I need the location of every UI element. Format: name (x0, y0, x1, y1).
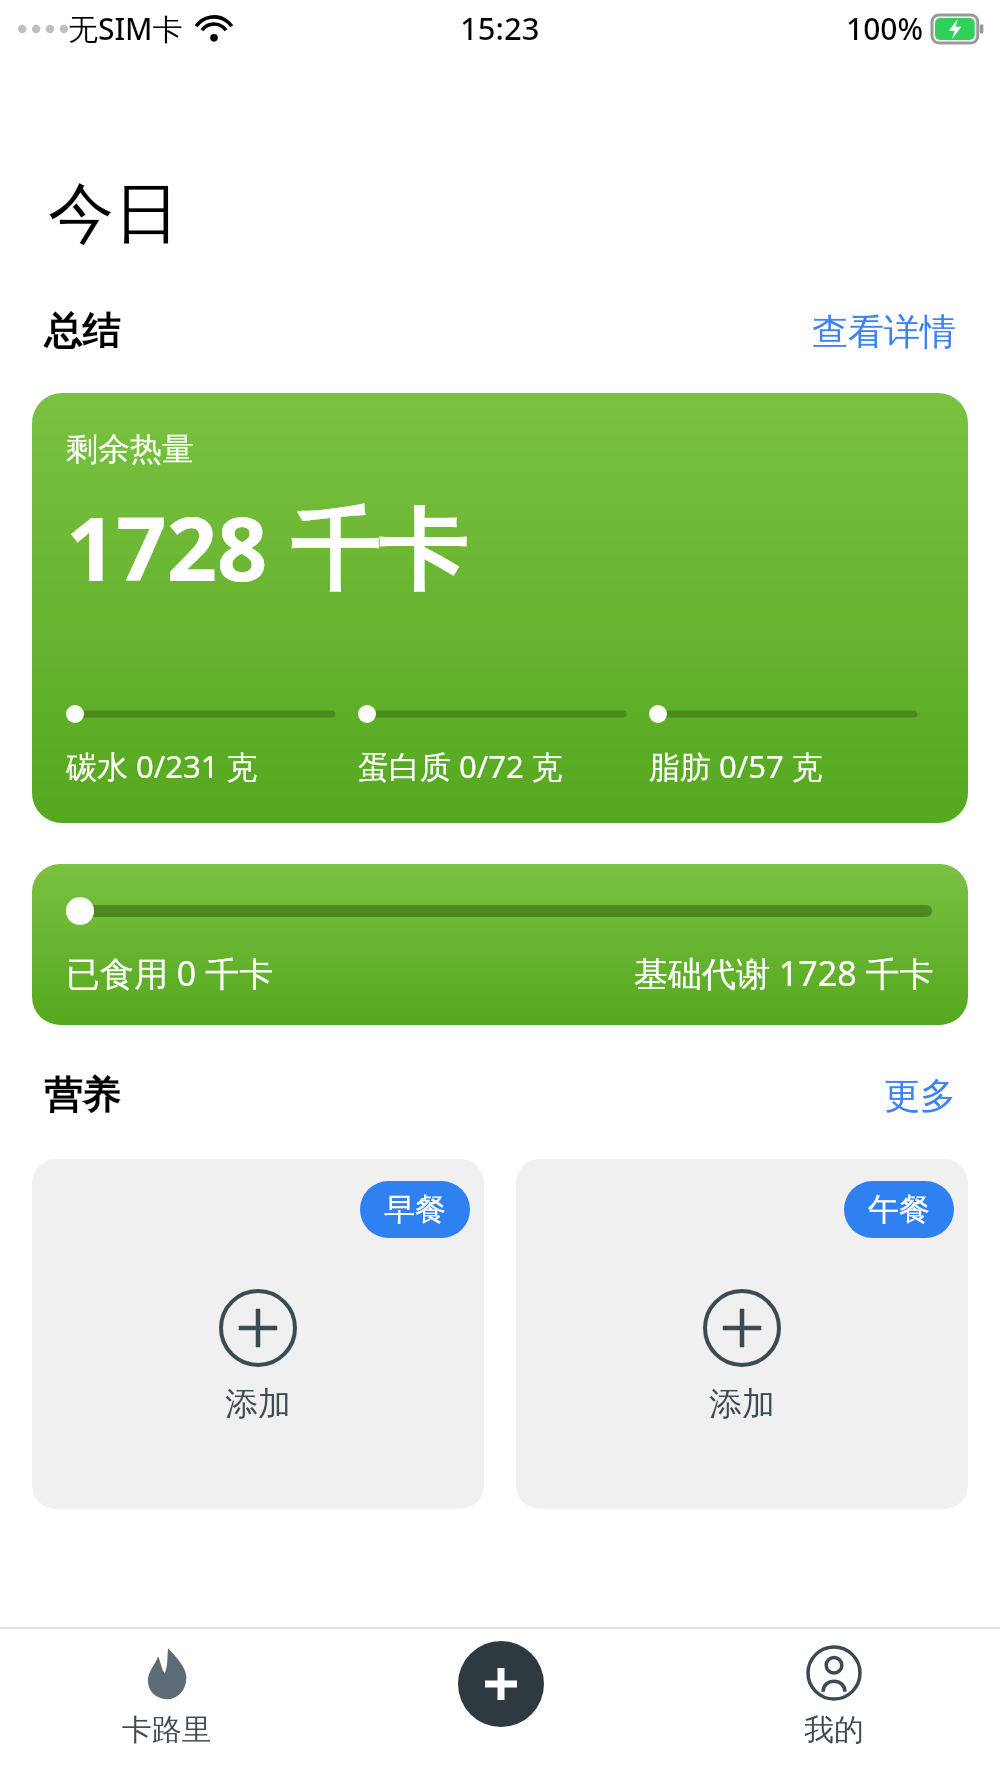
staticText: 1728 千卡 (66, 487, 467, 607)
staticText: 更多 (884, 1073, 956, 1118)
staticText: 基础代谢 1728 千卡 (634, 950, 934, 996)
staticText: 我的 (804, 1711, 864, 1749)
staticText: 午餐 (868, 1190, 930, 1229)
staticText: 卡路里 (122, 1711, 212, 1749)
staticText: 100% (846, 8, 924, 49)
button[interactable]: 午餐 (516, 1159, 968, 1509)
button[interactable]: 更多 (884, 1073, 956, 1118)
staticText: 蛋白质 0/72 克 (358, 745, 563, 787)
button[interactable]: Add entry (458, 1641, 544, 1727)
staticText: 总结 (44, 307, 120, 355)
button[interactable]: 已食用 0 千卡 (32, 864, 968, 1025)
staticText: 添加 (225, 1383, 291, 1425)
button[interactable]: 午餐 (844, 1181, 954, 1238)
staticText: 添加 (709, 1383, 775, 1425)
staticText: 无SIM卡 (68, 8, 183, 49)
staticText: 查看详情 (812, 309, 956, 354)
staticText: 脂肪 0/57 克 (649, 745, 823, 787)
staticText: 已食用 0 千卡 (66, 950, 274, 996)
staticText: 营养 (44, 1071, 120, 1119)
staticText: 今日 (48, 172, 180, 255)
button[interactable]: 早餐 (32, 1159, 484, 1509)
staticText: 早餐 (384, 1190, 446, 1229)
button[interactable]: 卡路里 (0, 1627, 334, 1778)
button[interactable]: 早餐 (360, 1181, 470, 1238)
staticText: 碳水 0/231 克 (66, 745, 258, 787)
button[interactable]: 我的 (667, 1627, 1000, 1778)
staticText: 剩余热量 (66, 429, 194, 469)
button[interactable]: 剩余热量 (32, 393, 968, 823)
button[interactable]: 查看详情 (812, 309, 956, 354)
staticText: 15:23 (460, 7, 540, 49)
